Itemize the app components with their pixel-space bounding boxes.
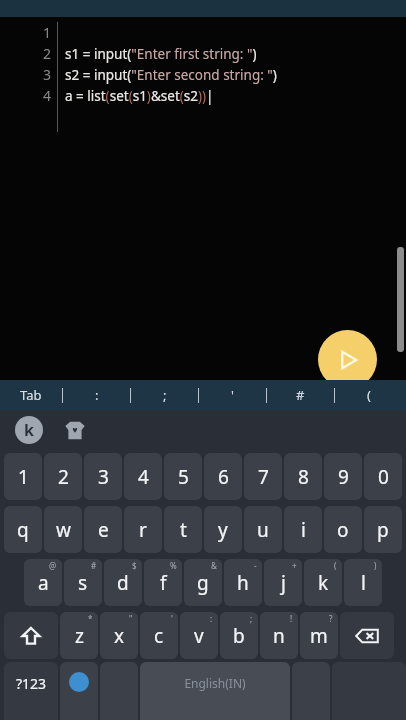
staticText: * [88,613,93,624]
staticText: s2 = input("Enter second string: ") [65,66,277,84]
staticText: a = list(set(s1)&set(s2))| [65,87,214,105]
button[interactable]: * [60,612,98,659]
button[interactable]: ) [344,559,382,606]
staticText: k [24,419,34,441]
button[interactable]: $ [104,559,142,606]
staticText: z [75,623,84,649]
button[interactable]: ; [131,380,198,410]
button[interactable]: 7 [244,453,282,500]
staticText: $ [132,560,137,571]
staticText: h [237,570,249,596]
button[interactable]: : [180,612,218,659]
button[interactable]: 0 [364,453,402,500]
button[interactable]: + [264,559,302,606]
staticText: + [292,560,297,571]
staticText: r [139,517,147,543]
staticText: ? [329,613,333,624]
button[interactable]: & [184,559,222,606]
staticText: m [310,623,328,649]
staticText: ; [163,386,167,404]
button[interactable]: t [164,506,202,553]
button[interactable]: Keyboard menu [15,416,43,444]
button[interactable]: Backspace [340,612,394,659]
button[interactable]: 1 [4,453,42,500]
staticText: ! [290,613,293,624]
button[interactable]: Run [318,330,377,389]
staticText: 2 [58,464,69,490]
button[interactable]: ( [335,380,402,410]
staticText: s [78,570,88,596]
button[interactable]: e [84,506,122,553]
button[interactable]: ? [300,612,338,659]
button[interactable]: Tab [0,380,62,410]
staticText: f [160,570,167,596]
button[interactable]: Stickers [61,416,89,444]
staticText: w [56,517,71,543]
button[interactable]: ?123 [4,662,58,720]
staticText: ( [367,386,371,404]
staticText: 9 [338,464,349,490]
staticText: 1 [18,464,29,490]
button[interactable]: q [4,506,42,553]
staticText: 8 [298,464,309,490]
staticText: ; [250,613,253,624]
button[interactable]: English(IN) [140,662,290,720]
button[interactable]: % [144,559,182,606]
staticText: g [197,570,209,596]
staticText: x [114,623,125,649]
staticText: # [91,560,97,571]
staticText: 7 [258,464,269,490]
button[interactable]: - [224,559,262,606]
staticText: b [233,623,245,649]
button[interactable]: # [64,559,102,606]
button[interactable]: r [124,506,162,553]
staticText: j [281,570,286,596]
button[interactable]: o [324,506,362,553]
button[interactable]: ( [304,559,342,606]
staticText: # [296,386,305,404]
button[interactable]: Change language [60,662,98,720]
staticText: n [273,623,285,649]
staticText: ) [374,560,377,571]
button[interactable]: ' [140,612,178,659]
staticText: % [170,560,177,571]
button[interactable]: ' [199,380,266,410]
staticText: i [301,517,306,543]
button[interactable]: w [44,506,82,553]
staticText: s1 = input("Enter first string: ") [65,45,257,63]
staticText: ' [171,613,173,624]
staticText: ?123 [16,674,47,693]
button[interactable]: # [267,380,334,410]
staticText: e [98,517,109,543]
button[interactable]: 8 [284,453,322,500]
button[interactable]: 3 [84,453,122,500]
button[interactable]: i [284,506,322,553]
button[interactable]: @ [24,559,62,606]
staticText: p [377,517,389,543]
button[interactable]: 9 [324,453,362,500]
button[interactable]: Shift [4,612,58,659]
button[interactable]: " [100,612,138,659]
staticText: 2 [43,44,52,63]
staticText: @ [49,560,57,571]
staticText: q [17,517,29,543]
button[interactable]: ; [220,612,258,659]
button[interactable]: y [204,506,242,553]
staticText: 3 [98,464,109,490]
button[interactable]: ! [260,612,298,659]
button[interactable]: 4 [124,453,162,500]
button[interactable]: p [364,506,402,553]
staticText: 4 [138,464,149,490]
button[interactable]: u [244,506,282,553]
button[interactable]: 6 [204,453,242,500]
staticText: t [180,517,187,543]
staticText: c [154,623,164,649]
button[interactable]: : [63,380,130,410]
button[interactable]: 5 [164,453,202,500]
staticText: y [218,517,228,543]
button[interactable]: 2 [44,453,82,500]
staticText: English(IN) [184,675,246,691]
